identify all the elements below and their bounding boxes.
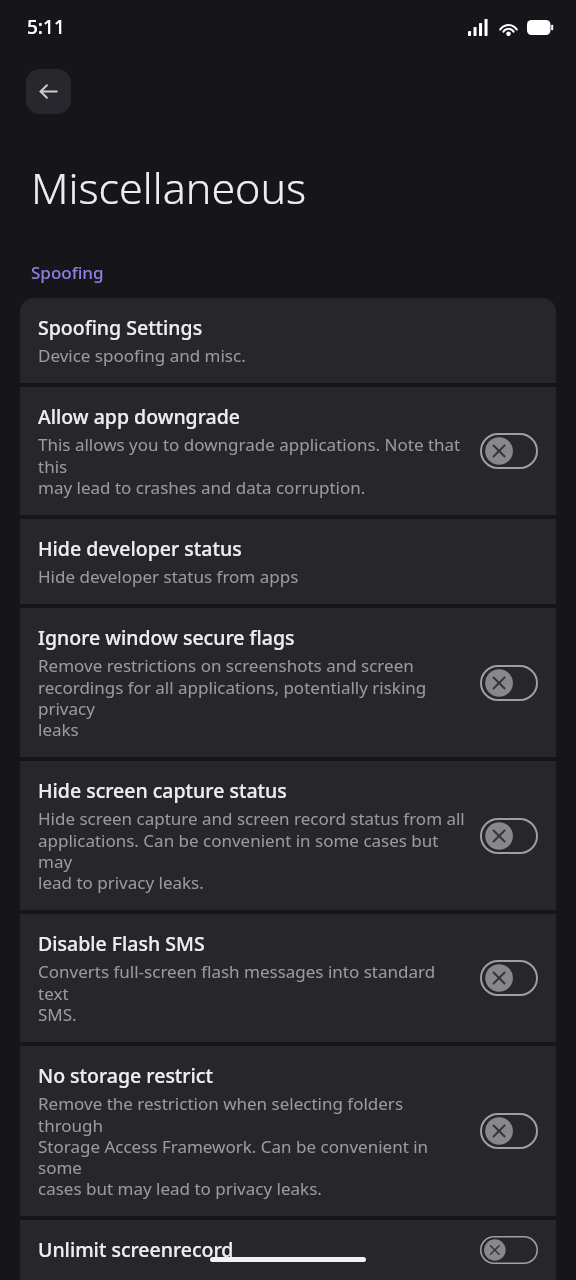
staticText: Disable Flash SMS	[38, 930, 205, 957]
staticText: Converts full-screen flash messages into…	[38, 960, 466, 1026]
staticText: Spoofing	[31, 261, 104, 284]
staticText: Hide developer status from apps	[38, 565, 299, 588]
staticText: 5:11	[27, 14, 65, 40]
button[interactable]: Toggle, off	[480, 1236, 538, 1264]
staticText: Hide developer status	[38, 535, 242, 562]
staticText: Ignore window secure flags	[38, 624, 295, 651]
button[interactable]: Back	[26, 69, 71, 114]
button[interactable]: Toggle, off	[480, 665, 538, 701]
staticText: Miscellaneous	[31, 158, 307, 217]
button[interactable]: Disable Flash SMS	[20, 914, 556, 1042]
button[interactable]: Spoofing Settings	[20, 298, 556, 383]
button[interactable]: Ignore window secure flags	[20, 608, 556, 757]
button[interactable]: Allow app downgrade	[20, 387, 556, 515]
button[interactable]: Toggle, off	[480, 433, 538, 469]
staticText: Allow app downgrade	[38, 403, 241, 430]
button[interactable]: Toggle, off	[480, 818, 538, 854]
staticText: Remove the restriction when selecting fo…	[38, 1092, 466, 1200]
button[interactable]: Unlimit screenrecord	[20, 1220, 556, 1280]
button[interactable]: Hide screen capture status	[20, 761, 556, 910]
staticText: Device spoofing and misc.	[38, 344, 246, 367]
staticText: Spoofing Settings	[38, 314, 203, 341]
staticText: Hide screen capture and screen record st…	[38, 807, 466, 894]
staticText: Hide screen capture status	[38, 777, 287, 804]
button[interactable]: Hide developer status	[20, 519, 556, 604]
staticText: No storage restrict	[38, 1062, 213, 1089]
button[interactable]: Toggle, off	[480, 960, 538, 996]
button[interactable]: No storage restrict	[20, 1046, 556, 1216]
staticText: Remove restrictions on screenshots and s…	[38, 654, 466, 741]
staticText: This allows you to downgrade application…	[38, 433, 466, 499]
button[interactable]: Toggle, off	[480, 1113, 538, 1149]
staticText: Unlimit screenrecord	[38, 1236, 234, 1263]
